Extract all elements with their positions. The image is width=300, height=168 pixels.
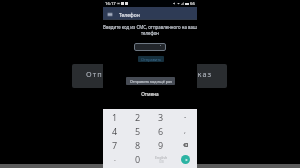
button[interactable]: Отправить <box>138 56 164 62</box>
button[interactable]: Отправить голосовой заказ <box>72 64 227 88</box>
staticText: , <box>184 126 186 136</box>
button[interactable]: 1 <box>103 109 126 124</box>
staticText: English <box>155 155 168 160</box>
button[interactable]: . <box>103 152 126 166</box>
button[interactable]: Backspace <box>173 138 197 152</box>
button[interactable]: 4 <box>103 124 126 138</box>
other: Menu <box>108 13 112 16</box>
button[interactable]: 9 <box>149 138 173 152</box>
staticText: 16:17 <box>105 1 116 7</box>
staticText: Телефон <box>119 12 140 19</box>
button[interactable]: 7 <box>103 138 126 152</box>
staticText: 8 <box>135 139 141 151</box>
staticText: 66 <box>190 1 195 7</box>
staticText: 5 <box>135 125 141 137</box>
staticText: (US) <box>159 160 164 164</box>
staticText: . <box>114 154 116 164</box>
staticText: Отправить <box>141 57 162 62</box>
staticText: Отправить голосовой заказ <box>86 69 213 79</box>
button[interactable]: Enter <box>173 152 197 166</box>
staticText: 9 <box>158 139 164 151</box>
button[interactable]: , <box>173 124 197 138</box>
staticText: 0 <box>135 153 141 165</box>
button[interactable]: 0 <box>126 152 149 166</box>
other: Backspace <box>183 143 188 147</box>
button[interactable]: 8 <box>126 138 149 152</box>
staticText: Отмена <box>103 91 197 97</box>
staticText: - <box>184 112 187 122</box>
staticText: 1 <box>112 111 118 123</box>
staticText: 2 <box>135 111 141 123</box>
button[interactable]: Отправить код ещё раз <box>126 77 175 85</box>
other: Enter <box>181 155 190 164</box>
button[interactable]: 6 <box>149 124 173 138</box>
staticText: 6 <box>158 125 164 137</box>
button[interactable] <box>134 43 166 51</box>
staticText: 4 <box>112 125 118 137</box>
staticText: Введите код из СМС, отправленного на ваш… <box>103 24 197 36</box>
button[interactable]: - <box>173 109 197 124</box>
button[interactable]: 3 <box>149 109 173 124</box>
staticText: 3 <box>158 111 164 123</box>
button[interactable]: 5 <box>126 124 149 138</box>
staticText: 7 <box>112 139 118 151</box>
staticText: Отправить код ещё раз <box>130 79 172 84</box>
button[interactable]: 2 <box>126 109 149 124</box>
button[interactable]: English <box>149 152 173 166</box>
